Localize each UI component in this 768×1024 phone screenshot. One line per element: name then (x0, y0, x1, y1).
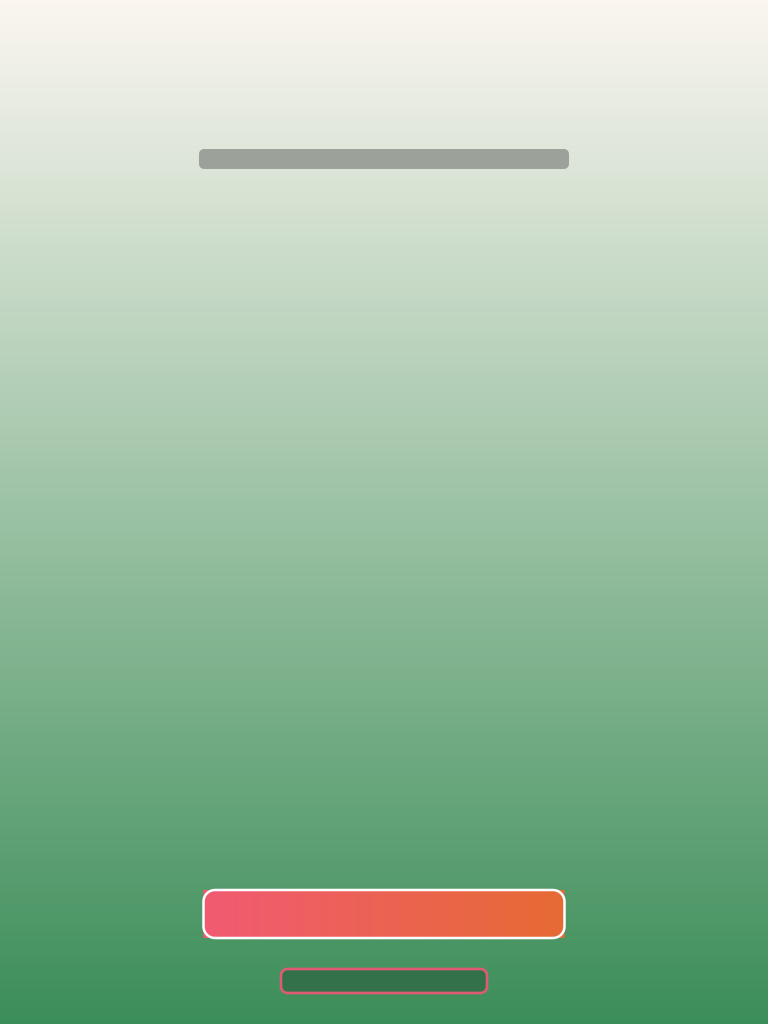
button[interactable]: Continue (203, 890, 564, 938)
button[interactable]: Secondary action (281, 969, 487, 993)
